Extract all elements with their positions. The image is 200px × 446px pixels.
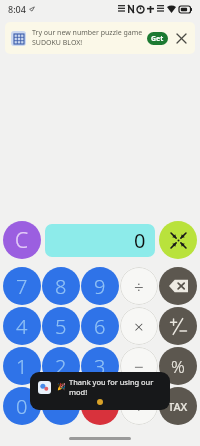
button[interactable]: Get — [147, 32, 168, 45]
staticText: 9 — [94, 273, 106, 300]
button[interactable]: 2 — [42, 347, 80, 385]
button[interactable]: Close ad — [173, 30, 189, 46]
button[interactable]: 1 — [3, 347, 41, 385]
staticText: 0 — [134, 227, 146, 254]
button[interactable]: Plus minus — [159, 307, 197, 345]
button[interactable]: Backspace — [159, 267, 197, 305]
staticText: 6 — [94, 313, 106, 340]
staticText: − — [134, 355, 144, 378]
staticText: C — [15, 226, 29, 255]
staticText: 4 — [16, 313, 28, 340]
button[interactable]: × — [120, 307, 158, 345]
staticText: Thank you for using our mod! — [69, 377, 162, 397]
staticText: 8 — [55, 273, 67, 300]
button[interactable]: ÷ — [120, 267, 158, 305]
button[interactable]: 6 — [81, 307, 119, 345]
button[interactable]: + — [120, 387, 158, 425]
staticText: 2 — [55, 353, 67, 380]
staticText: 5 — [55, 313, 67, 340]
button[interactable]: 0 — [45, 224, 155, 257]
staticText: % — [171, 355, 185, 378]
button[interactable]: TAX — [159, 387, 197, 425]
staticText: 🎉 — [57, 383, 66, 391]
staticText: Get — [151, 34, 164, 44]
button[interactable]: 8 — [42, 267, 80, 305]
button[interactable]: − — [120, 347, 158, 385]
staticText: = — [95, 393, 106, 419]
staticText: 8:04 — [8, 3, 26, 15]
button[interactable]: Decimal point — [42, 387, 80, 425]
staticText: × — [134, 315, 144, 338]
button[interactable]: Collapse — [159, 221, 197, 259]
button[interactable]: C — [3, 221, 41, 259]
button[interactable]: 3 — [81, 347, 119, 385]
button[interactable]: 7 — [3, 267, 41, 305]
staticText: 0 — [16, 393, 28, 420]
staticText: 7 — [16, 273, 28, 300]
button[interactable]: % — [159, 347, 197, 385]
staticText: ÷ — [134, 275, 144, 298]
staticText: 1 — [16, 353, 28, 380]
staticText: TAX — [168, 399, 188, 414]
button[interactable]: Try our new number puzzle game SUDOKU BL… — [5, 22, 195, 54]
staticText: Try our new number puzzle game SUDOKU BL… — [32, 28, 143, 48]
staticText: 3 — [94, 353, 106, 380]
button[interactable]: 5 — [42, 307, 80, 345]
staticText: + — [134, 395, 144, 418]
button[interactable]: = — [81, 387, 119, 425]
button[interactable]: 0 — [3, 387, 41, 425]
button[interactable]: 4 — [3, 307, 41, 345]
button[interactable]: 9 — [81, 267, 119, 305]
